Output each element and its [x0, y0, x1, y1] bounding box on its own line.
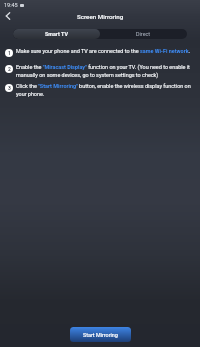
staticText: Smart TV [45, 31, 68, 37]
staticText: Direct [136, 31, 151, 37]
button[interactable]: Direct [100, 29, 187, 39]
staticText: Start Mirroring [83, 332, 118, 338]
button[interactable]: Start Mirroring [70, 327, 131, 342]
staticText: 19:45 [4, 2, 18, 8]
staticText: Enable the "Miracast Display" function o… [16, 64, 199, 78]
staticText: 1 [8, 50, 11, 56]
staticText: Click the "Start Mirroring" button, enab… [16, 83, 199, 97]
staticText: 2 [8, 66, 11, 72]
staticText: Screen Mirroring [77, 13, 124, 20]
staticText: 3 [8, 85, 11, 91]
button[interactable]: Smart TV [13, 29, 100, 39]
staticText: Make sure your phone and TV are connecte… [16, 48, 190, 54]
button[interactable]: Back [2, 10, 14, 22]
